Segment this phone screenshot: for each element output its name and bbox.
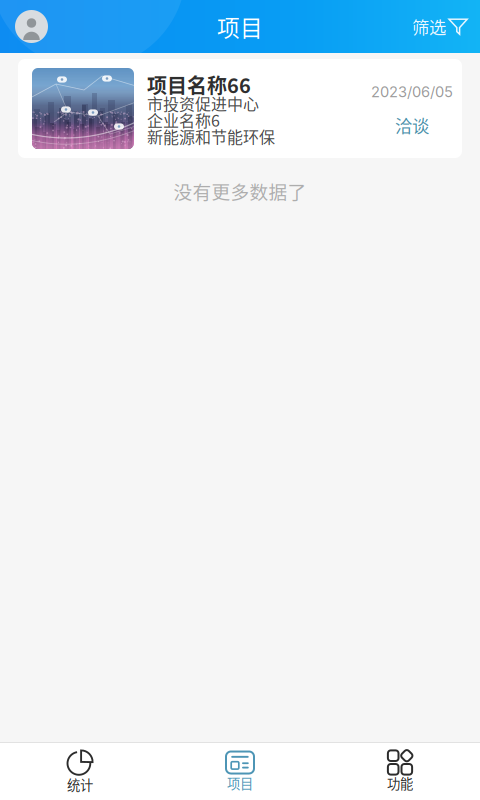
button[interactable]: 统计 (0, 743, 160, 800)
staticText: 统计 (67, 775, 93, 794)
staticText: 项目 (227, 773, 253, 793)
staticText: 项目名称66 (147, 70, 251, 99)
staticText: 功能 (387, 773, 413, 793)
staticText: 没有更多数据了 (173, 177, 306, 204)
button[interactable]: 项目名称66 (18, 59, 462, 158)
staticText: 市投资促进中心 (147, 92, 259, 115)
button[interactable]: 功能 (320, 743, 480, 800)
staticText: 项目 (217, 10, 263, 43)
staticText: 筛选 (412, 14, 446, 39)
staticText: 企业名称6 (147, 108, 220, 131)
staticText: 洽谈 (395, 112, 429, 138)
button[interactable]: 项目 (160, 743, 320, 800)
staticText: 2023/06/05 (371, 83, 453, 101)
button[interactable]: 筛选 (400, 0, 480, 53)
staticText: 新能源和节能环保 (147, 125, 275, 148)
button[interactable]: 个人中心 (0, 0, 60, 53)
